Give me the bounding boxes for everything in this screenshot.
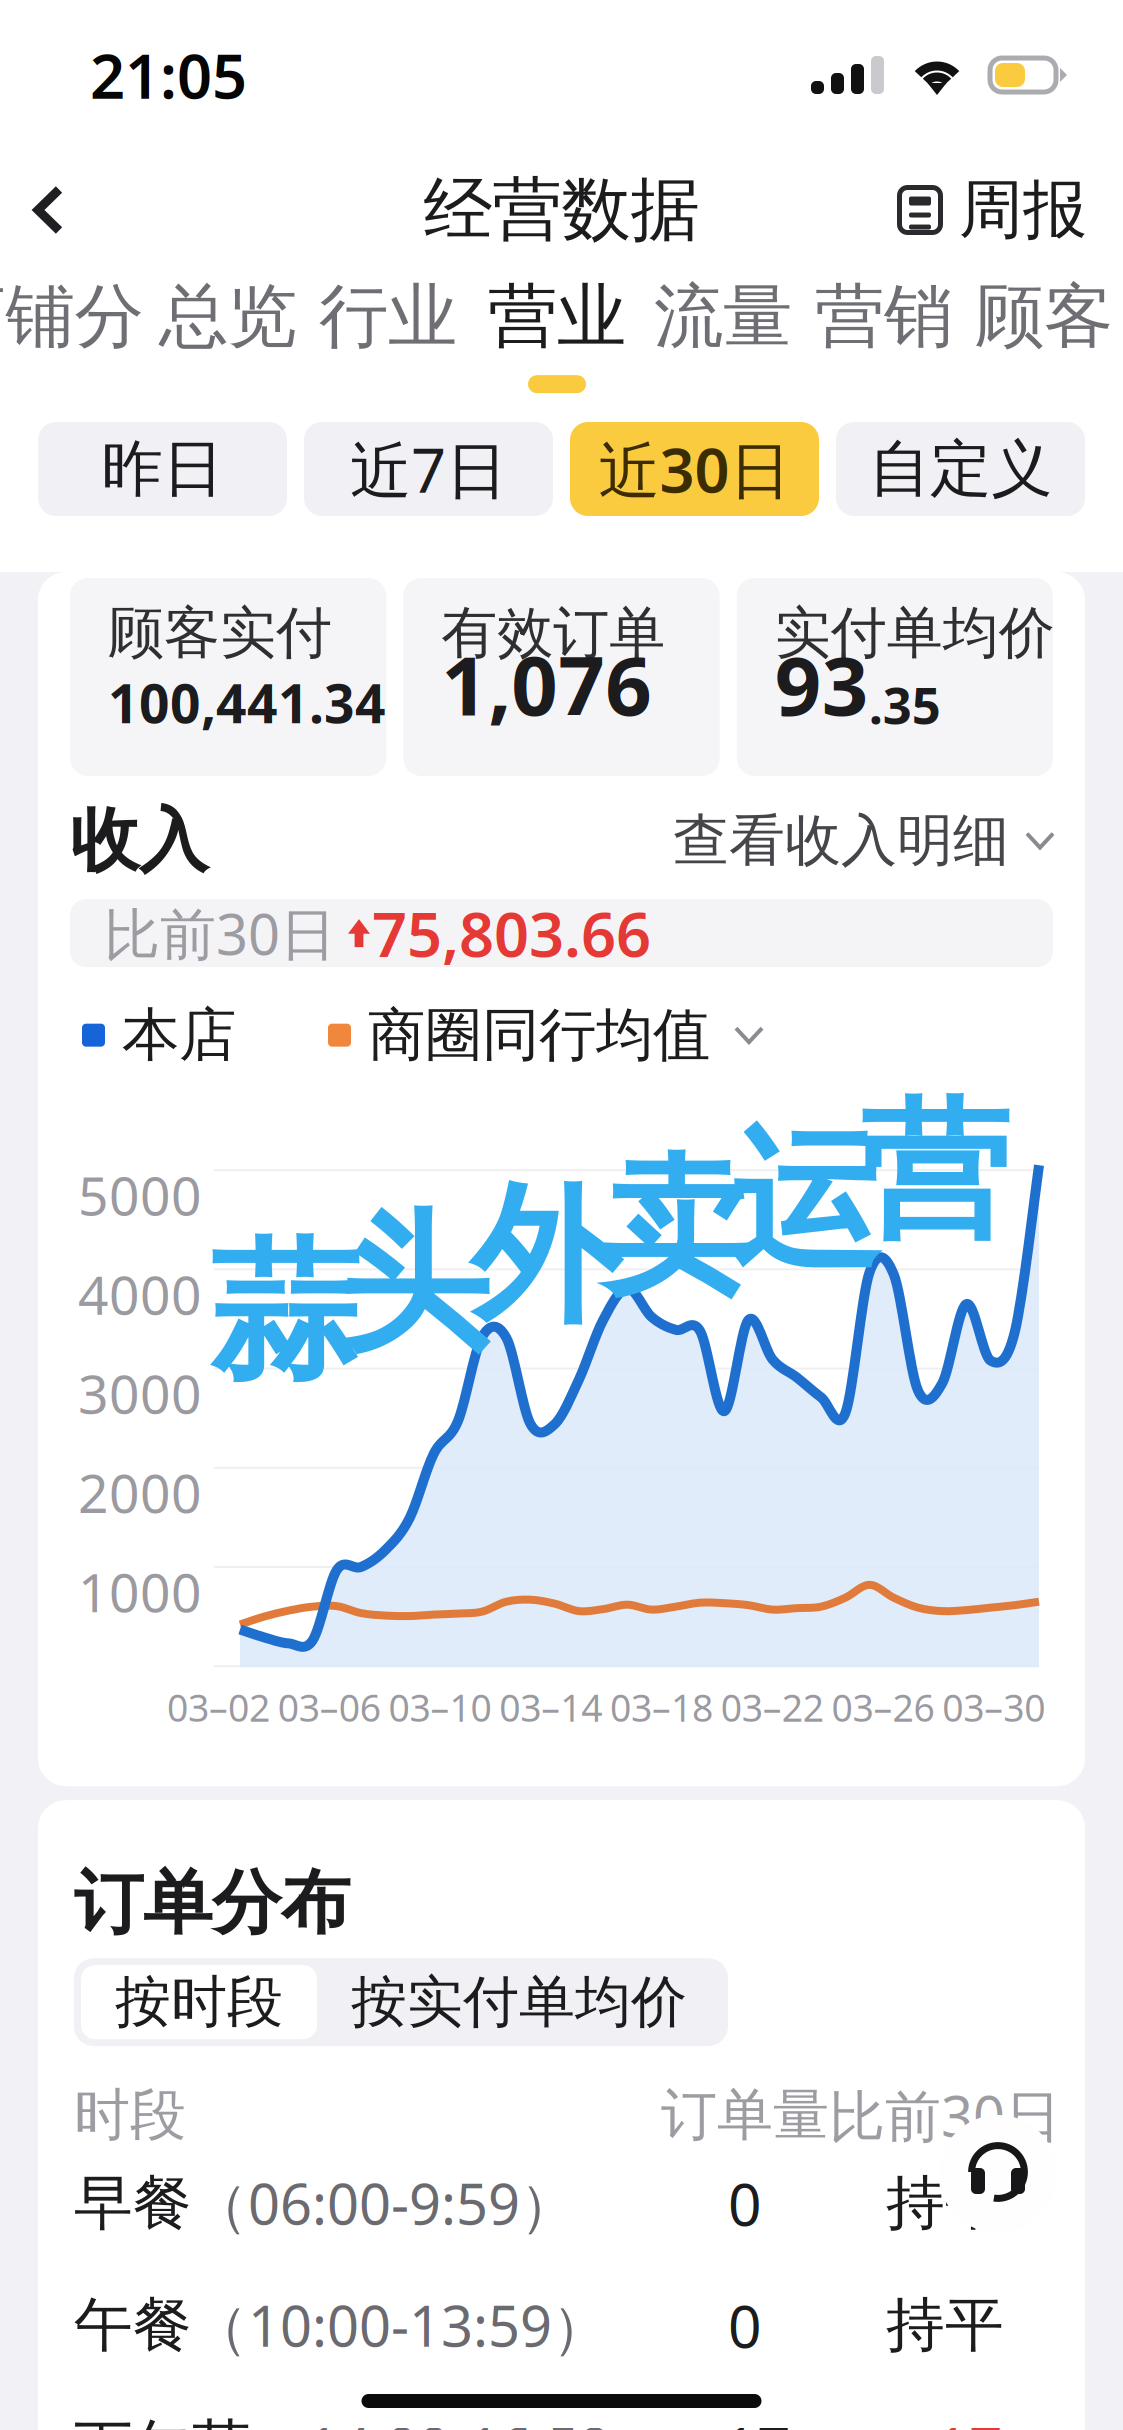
- staticText: 4000: [78, 1258, 202, 1329]
- staticText: 持平: [886, 2289, 1004, 2361]
- button[interactable]: 自定义: [836, 422, 1085, 516]
- staticText: 顾客: [975, 274, 1113, 359]
- staticText: 运: [730, 1109, 879, 1293]
- staticText: 蒜: [210, 1221, 359, 1405]
- staticText: 外: [470, 1165, 619, 1349]
- button[interactable]: 顾客: [954, 266, 1123, 426]
- button[interactable]: 流量: [633, 266, 813, 426]
- staticText: 行业: [319, 274, 457, 359]
- staticText: 2000: [78, 1457, 202, 1528]
- staticText: 93: [775, 630, 869, 738]
- staticText: （10:00-13:59）: [192, 2288, 608, 2362]
- button[interactable]: Back: [0, 150, 83, 270]
- button[interactable]: 店铺分: [0, 266, 130, 426]
- staticText: 03–02: [167, 1682, 270, 1732]
- staticText: 按实付单均价: [351, 1968, 687, 2037]
- staticText: 75,803.66: [372, 892, 651, 974]
- staticText: 100,441.34: [108, 667, 386, 738]
- staticText: 03–10: [388, 1682, 491, 1732]
- button[interactable]: 按时段: [81, 1965, 317, 2039]
- staticText: 03–30: [942, 1682, 1045, 1732]
- staticText: 按时段: [115, 1968, 283, 2037]
- staticText: 总览: [159, 274, 297, 359]
- staticText: 5000: [78, 1159, 202, 1230]
- staticText: 17: [935, 2408, 1003, 2430]
- staticText: 订单分布: [74, 1861, 350, 1946]
- staticText: （14:00-16:59）: [251, 2410, 667, 2430]
- button[interactable]: 总览: [138, 266, 318, 426]
- staticText: 比前30日: [104, 896, 336, 970]
- button[interactable]: Customer support: [939, 2115, 1057, 2233]
- button[interactable]: 营业: [467, 266, 647, 426]
- staticText: 昨日: [101, 431, 223, 507]
- staticText: 持平: [886, 2167, 1004, 2239]
- button[interactable]: 查看收入明细: [673, 806, 1053, 875]
- staticText: 下午茶: [74, 2411, 251, 2430]
- staticText: 有效订单: [441, 599, 665, 667]
- staticText: 订单量: [661, 2081, 829, 2150]
- staticText: 卖: [600, 1137, 749, 1321]
- staticText: 17: [723, 2408, 791, 2430]
- staticText: 午餐: [74, 2289, 192, 2361]
- staticText: 03–26: [831, 1682, 934, 1732]
- staticText: 03–06: [278, 1682, 381, 1732]
- staticText: 流量: [654, 274, 792, 359]
- staticText: 商圈同行均值: [368, 1000, 710, 1070]
- staticText: 自定义: [869, 431, 1052, 507]
- staticText: 本店: [122, 1000, 236, 1070]
- staticText: 近30日: [598, 428, 790, 510]
- button[interactable]: 营销: [794, 266, 974, 426]
- staticText: 店铺分: [0, 274, 143, 359]
- staticText: （06:00-9:59）: [192, 2166, 576, 2240]
- staticText: 顾客实付: [108, 599, 332, 667]
- staticText: 实付单均价: [775, 599, 1055, 667]
- staticText: 经营数据: [423, 167, 699, 253]
- staticText: 1,076: [441, 630, 652, 738]
- staticText: 时段: [74, 2081, 186, 2150]
- staticText: 营销: [815, 274, 953, 359]
- staticText: 头: [340, 1193, 489, 1377]
- staticText: 营: [860, 1081, 1009, 1265]
- button[interactable]: 行业: [298, 266, 478, 426]
- button[interactable]: 昨日: [38, 422, 287, 516]
- staticText: 比前30日: [829, 2078, 1061, 2152]
- staticText: 营业: [488, 274, 626, 359]
- staticText: 0: [728, 2286, 762, 2364]
- staticText: 3000: [78, 1358, 202, 1428]
- button[interactable]: 周报: [899, 150, 1123, 270]
- button[interactable]: 近30日: [570, 422, 819, 516]
- staticText: 03–22: [721, 1682, 824, 1732]
- staticText: 早餐: [74, 2167, 192, 2239]
- staticText: 收入: [70, 798, 208, 883]
- staticText: 查看收入明细: [673, 806, 1009, 875]
- staticText: 周报: [959, 171, 1087, 249]
- staticText: 0: [728, 2164, 762, 2242]
- staticText: 03–14: [499, 1682, 602, 1732]
- staticText: 21:05: [90, 34, 247, 116]
- button[interactable]: 近7日: [304, 422, 553, 516]
- staticText: 1000: [78, 1556, 202, 1627]
- staticText: 近7日: [350, 428, 507, 510]
- staticText: 03–18: [610, 1682, 713, 1732]
- staticText: .35: [869, 671, 941, 738]
- button[interactable]: 按实付单均价: [317, 1965, 721, 2039]
